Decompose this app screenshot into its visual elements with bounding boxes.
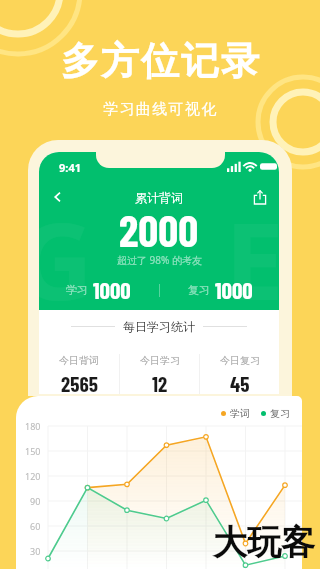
staticText: 今日学习	[140, 354, 180, 367]
staticText: G	[39, 188, 94, 331]
staticText: 1000	[215, 276, 253, 304]
staticText: 150	[25, 445, 41, 457]
staticText: 60	[30, 520, 41, 532]
staticText: 1000	[93, 276, 131, 304]
staticText: 超过了 98% 的考友	[117, 253, 202, 267]
button[interactable]: Back	[48, 187, 68, 207]
staticText: 多方位记录	[60, 37, 260, 85]
staticText: 180	[25, 420, 41, 432]
staticText: 2000	[119, 203, 199, 256]
staticText: 今日背词	[59, 354, 99, 367]
staticText: 累计背词	[135, 190, 183, 205]
staticText: 120	[25, 470, 41, 482]
staticText: 9:41	[59, 160, 81, 175]
staticText: 学词	[230, 407, 250, 420]
staticText: 30	[30, 545, 41, 557]
staticText: 2565	[61, 371, 98, 394]
staticText: 大玩客	[213, 521, 315, 564]
staticText: 复习	[188, 283, 210, 297]
staticText: 学习曲线可视化	[103, 100, 218, 119]
staticText: 12	[152, 371, 168, 394]
button[interactable]: Share	[250, 187, 270, 207]
staticText: 学习	[66, 283, 88, 297]
staticText: 每日学习统计	[123, 319, 195, 334]
staticText: 今日复习	[220, 354, 260, 367]
staticText: 复习	[270, 407, 290, 420]
staticText: 90	[30, 495, 41, 507]
staticText: E	[225, 188, 279, 331]
staticText: 45	[230, 371, 250, 394]
